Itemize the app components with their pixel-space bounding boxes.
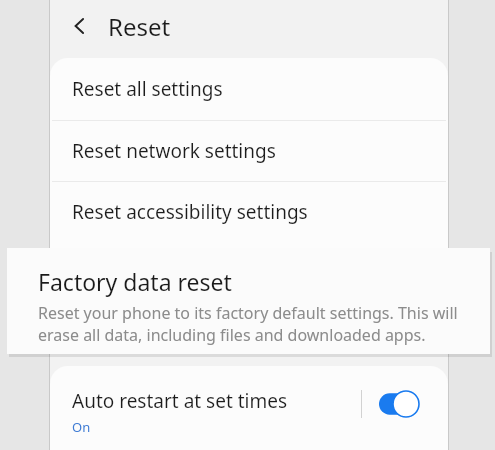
staticText: erase all data, including files and down… <box>38 324 426 346</box>
button[interactable]: Factory data reset <box>7 248 490 354</box>
button[interactable]: Reset accessibility settings <box>50 182 448 242</box>
staticText: Reset accessibility settings <box>72 199 308 225</box>
staticText: Reset all settings <box>72 76 223 102</box>
staticText: Reset your phone to its factory default … <box>38 302 458 324</box>
staticText: Auto restart at set times <box>72 388 288 414</box>
button[interactable]: Reset all settings <box>50 58 448 120</box>
staticText: Reset network settings <box>72 138 276 164</box>
button[interactable]: Back <box>62 8 98 44</box>
staticText: On <box>72 418 91 436</box>
button[interactable]: Reset network settings <box>50 121 448 181</box>
button[interactable]: Auto restart at set times <box>50 366 448 450</box>
staticText: Reset <box>108 10 171 43</box>
button[interactable]: Auto restart toggle, On <box>372 387 426 421</box>
staticText: Factory data reset <box>38 266 232 297</box>
